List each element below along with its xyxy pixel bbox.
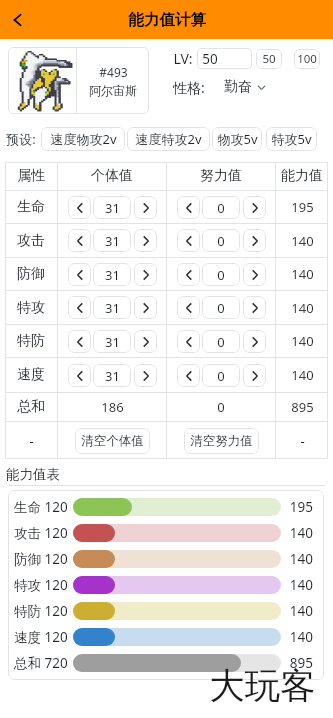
staticText: 清空个体值 — [81, 433, 144, 449]
button[interactable]: Increase — [134, 330, 157, 353]
staticText: - — [300, 432, 305, 450]
button[interactable]: Increase — [243, 364, 266, 387]
staticText: 特防 — [17, 332, 45, 350]
staticText: 0 — [217, 367, 225, 385]
button[interactable]: Decrease — [177, 263, 200, 286]
button[interactable]: 0 — [202, 263, 240, 286]
staticText: 195 — [287, 498, 313, 516]
staticText: 140 — [291, 332, 314, 350]
button[interactable]: Increase — [243, 229, 266, 252]
staticText: 140 — [287, 602, 313, 620]
staticText: 大玩客 — [209, 664, 316, 709]
button[interactable]: 31 — [93, 263, 131, 286]
staticText: 个体值 — [91, 167, 133, 185]
button[interactable]: 50 — [197, 48, 252, 69]
staticText: 能力值表 — [6, 466, 60, 483]
button[interactable]: 0 — [202, 364, 240, 387]
staticText: 勤奋 — [224, 78, 252, 96]
staticText: 攻击 120 — [14, 524, 73, 542]
button[interactable]: Increase — [134, 196, 157, 219]
staticText: 生命 120 — [14, 498, 73, 516]
staticText: 140 — [291, 265, 314, 283]
staticText: 属性 — [17, 167, 45, 185]
staticText: 31 — [105, 299, 120, 317]
staticText: #493 — [99, 64, 128, 80]
button[interactable]: 清空努力值 — [184, 428, 259, 454]
button[interactable]: Decrease — [68, 229, 91, 252]
staticText: 100 — [297, 51, 317, 67]
button[interactable]: Increase — [134, 263, 157, 286]
button[interactable]: Increase — [134, 229, 157, 252]
staticText: 总和 720 — [14, 654, 73, 672]
button[interactable]: Decrease — [68, 364, 91, 387]
button[interactable]: 速度物攻2v — [41, 127, 125, 151]
button[interactable]: 31 — [93, 196, 131, 219]
staticText: 清空努力值 — [190, 433, 253, 449]
staticText: 140 — [287, 628, 313, 646]
staticText: 0 — [217, 299, 225, 317]
staticText: 0 — [217, 333, 225, 351]
staticText: 防御 120 — [14, 550, 73, 568]
staticText: 140 — [291, 366, 314, 384]
staticText: 性格: — [173, 78, 205, 96]
button[interactable]: Increase — [243, 263, 266, 286]
staticText: 186 — [101, 398, 124, 416]
button[interactable]: 特攻5v — [266, 127, 317, 151]
staticText: 速度 — [17, 366, 45, 384]
staticText: 50 — [262, 51, 276, 67]
staticText: 140 — [287, 576, 313, 594]
staticText: 31 — [105, 367, 120, 385]
button[interactable]: Increase — [134, 296, 157, 319]
staticText: 速度特攻2v — [135, 130, 202, 148]
staticText: 阿尔宙斯 — [89, 83, 137, 98]
button[interactable]: Back — [0, 2, 36, 38]
button[interactable]: Decrease — [68, 296, 91, 319]
staticText: 140 — [287, 524, 313, 542]
staticText: 特攻5v — [271, 130, 312, 148]
staticText: 140 — [291, 232, 314, 250]
button[interactable]: Decrease — [68, 330, 91, 353]
staticText: 特攻 — [17, 299, 45, 317]
button[interactable]: 50 — [256, 49, 282, 69]
staticText: 能力值 — [281, 167, 323, 185]
button[interactable]: Increase — [243, 196, 266, 219]
staticText: 生命 — [17, 198, 45, 216]
button[interactable]: Decrease — [177, 196, 200, 219]
staticText: 物攻5v — [217, 130, 258, 148]
staticText: 速度物攻2v — [50, 130, 117, 148]
button[interactable]: Increase — [243, 296, 266, 319]
staticText: 努力值 — [200, 167, 242, 185]
button[interactable]: Decrease — [177, 330, 200, 353]
button[interactable]: 31 — [93, 229, 131, 252]
button[interactable]: Increase — [134, 364, 157, 387]
button[interactable]: 速度特攻2v — [127, 127, 210, 151]
staticText: 能力值计算 — [128, 10, 206, 30]
button[interactable]: 清空个体值 — [75, 428, 150, 454]
staticText: 140 — [287, 550, 313, 568]
button[interactable]: 0 — [202, 296, 240, 319]
button[interactable]: 31 — [93, 364, 131, 387]
button[interactable]: Decrease — [177, 296, 200, 319]
staticText: 31 — [105, 232, 120, 250]
button[interactable]: 物攻5v — [212, 127, 262, 151]
staticText: 195 — [291, 198, 314, 216]
button[interactable]: Decrease — [177, 364, 200, 387]
button[interactable]: Decrease — [68, 263, 91, 286]
button[interactable]: 0 — [202, 330, 240, 353]
button[interactable]: 31 — [93, 330, 131, 353]
button[interactable]: 0 — [202, 229, 240, 252]
button[interactable]: Increase — [243, 330, 266, 353]
staticText: 防御 — [17, 265, 45, 283]
staticText: 预设: — [6, 130, 36, 148]
staticText: 攻击 — [17, 232, 45, 250]
button[interactable]: 100 — [294, 49, 320, 69]
button[interactable]: Decrease — [68, 196, 91, 219]
staticText: 31 — [105, 266, 120, 284]
button[interactable]: 31 — [93, 296, 131, 319]
staticText: 特防 120 — [14, 602, 73, 620]
button[interactable]: 0 — [202, 196, 240, 219]
staticText: 0 — [217, 266, 225, 284]
button[interactable]: Decrease — [177, 229, 200, 252]
staticText: 速度 120 — [14, 628, 73, 646]
staticText: 0 — [217, 398, 225, 416]
